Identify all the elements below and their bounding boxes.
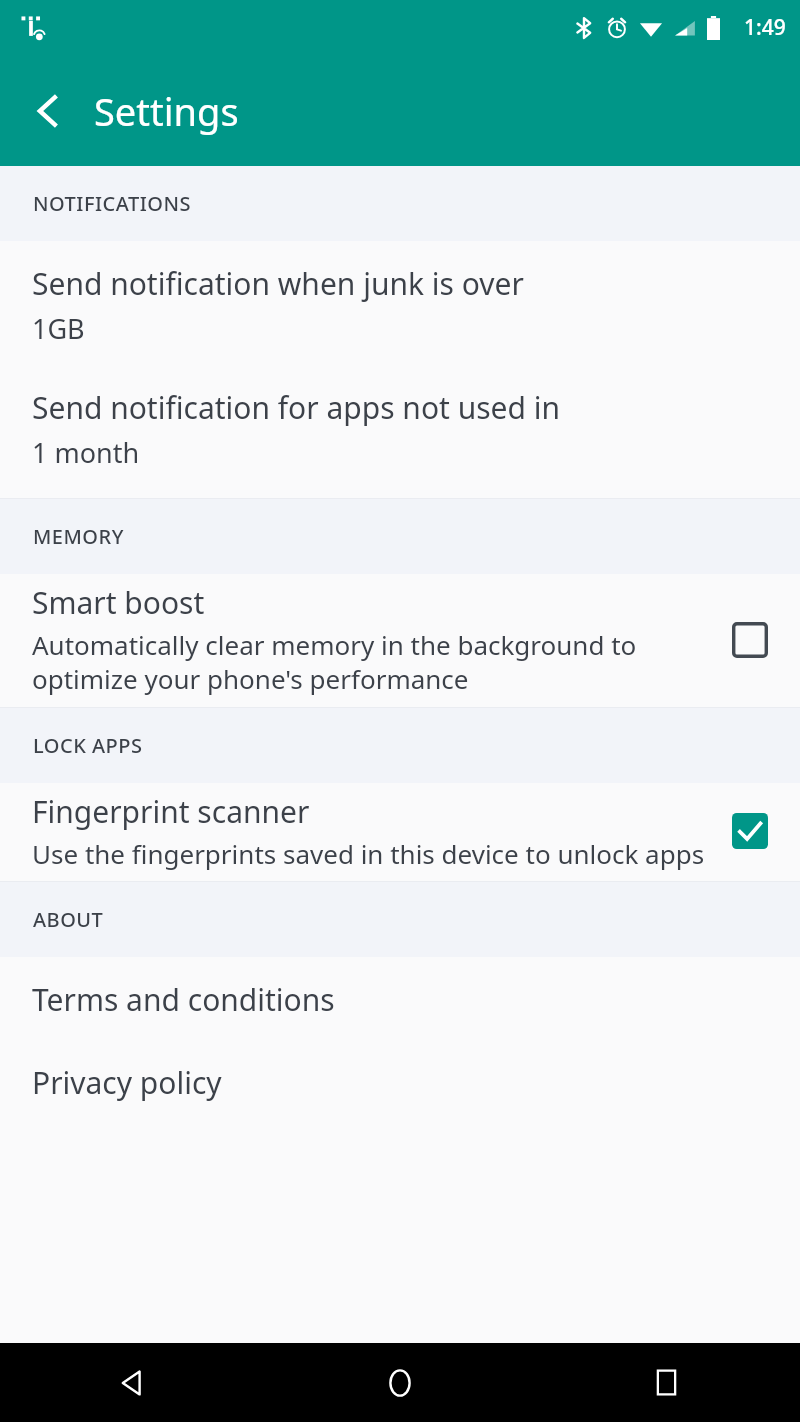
button[interactable]: Enabled: [722, 803, 778, 859]
staticText: Settings: [94, 85, 239, 137]
staticText: NOTIFICATIONS: [33, 190, 191, 217]
staticText: MEMORY: [33, 523, 124, 550]
button[interactable]: Recent apps: [533, 1343, 800, 1422]
staticText: Send notification when junk is over: [32, 263, 524, 304]
button[interactable]: Send notification for apps not used in: [0, 387, 800, 471]
staticText: Terms and conditions: [32, 979, 335, 1020]
staticText: Smart boost: [32, 582, 205, 623]
button[interactable]: Terms and conditions: [0, 979, 800, 1020]
staticText: LOCK APPS: [33, 732, 143, 759]
staticText: 1:49: [744, 13, 786, 42]
staticText: ABOUT: [33, 906, 104, 933]
button[interactable]: Fingerprint scanner: [0, 791, 800, 871]
button[interactable]: Smart boost: [0, 582, 800, 697]
staticText: Privacy policy: [32, 1062, 222, 1103]
button[interactable]: Disabled: [722, 612, 778, 668]
button[interactable]: Privacy policy: [0, 1062, 800, 1103]
button[interactable]: Back: [0, 1343, 266, 1422]
staticText: 1GB: [32, 310, 85, 347]
button[interactable]: Back: [16, 79, 80, 143]
staticText: Automatically clear memory in the backgr…: [32, 627, 712, 697]
button[interactable]: Send notification when junk is over: [0, 263, 800, 347]
button[interactable]: Home: [266, 1343, 533, 1422]
staticText: Use the fingerprints saved in this devic…: [32, 836, 705, 871]
staticText: Send notification for apps not used in: [32, 387, 561, 428]
staticText: Fingerprint scanner: [32, 791, 310, 832]
staticText: 1 month: [32, 434, 140, 471]
